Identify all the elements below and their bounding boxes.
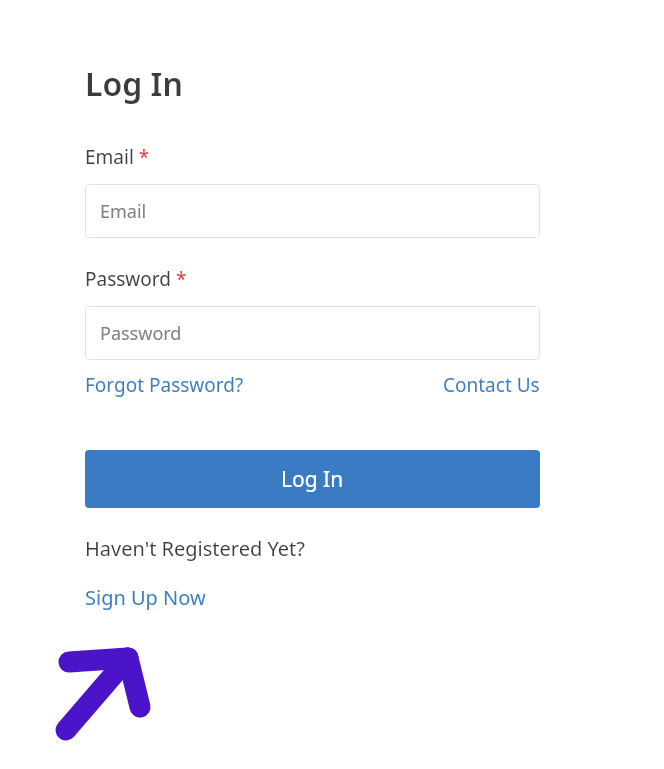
staticText: Log In <box>281 465 344 494</box>
button[interactable]: Email <box>85 184 540 238</box>
button[interactable]: Forgot Password? <box>85 372 244 398</box>
staticText: Email <box>100 199 147 224</box>
staticText: Forgot Password? <box>85 372 244 398</box>
button[interactable]: Sign Up Now <box>85 584 206 611</box>
staticText: Haven't Registered Yet? <box>85 535 305 562</box>
other: Arrow pointing to Sign Up Now <box>54 645 154 740</box>
staticText: Password * <box>85 266 187 292</box>
staticText: Sign Up Now <box>85 584 206 611</box>
staticText: Email * <box>85 144 150 170</box>
button[interactable]: Log In <box>85 450 540 508</box>
button[interactable]: Password <box>85 306 540 360</box>
button[interactable]: Contact Us <box>443 372 540 398</box>
staticText: Password <box>100 321 182 346</box>
staticText: Log In <box>85 62 183 106</box>
staticText: Contact Us <box>443 372 540 398</box>
